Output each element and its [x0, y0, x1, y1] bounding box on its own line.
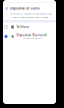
button[interactable]: Teléfono — [3, 22, 56, 31]
staticText: Dispositivo de audio — [10, 7, 40, 10]
staticText: AirPods Pro de Ana — [23, 37, 41, 40]
button[interactable]: Back — [3, 5, 10, 12]
staticText: Dispositivo Bluetooth — [16, 33, 47, 37]
staticText: para el audio durante esta llamada. — [13, 16, 49, 19]
staticText: Teléfono — [16, 25, 29, 29]
button[interactable]: Dispositivo Bluetooth — [3, 31, 56, 41]
staticText: Selecciona el dispositivo que quieres us… — [10, 12, 52, 15]
